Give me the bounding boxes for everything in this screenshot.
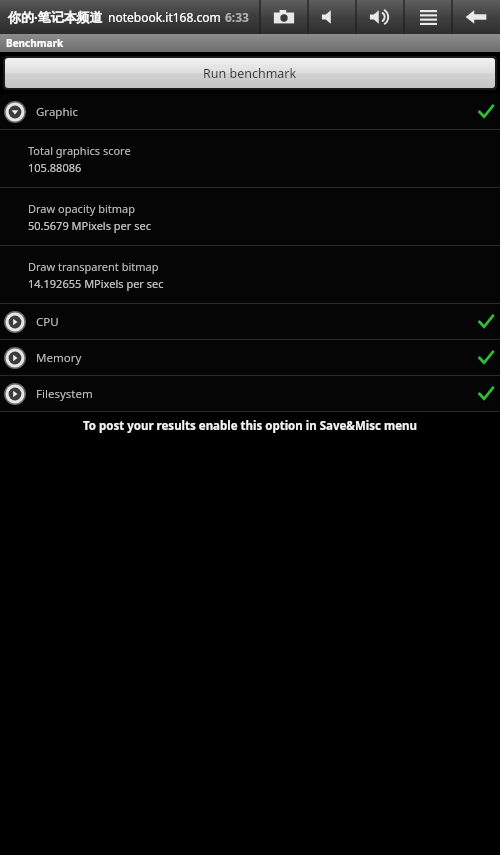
staticText: Graphic xyxy=(36,104,79,120)
button[interactable]: Total graphics score xyxy=(0,130,500,187)
staticText: Memory xyxy=(36,350,82,366)
staticText: Draw opacity bitmap xyxy=(28,201,135,216)
staticText: Total graphics score xyxy=(28,143,131,158)
staticText: Draw transparent bitmap xyxy=(28,259,159,274)
staticText: To post your results enable this option … xyxy=(83,418,417,434)
button[interactable]: CPU xyxy=(0,304,500,339)
button[interactable]: Draw transparent bitmap xyxy=(0,246,500,303)
button[interactable]: Memory xyxy=(0,340,500,375)
staticText: 6:33 xyxy=(225,9,249,25)
button[interactable]: Camera xyxy=(260,0,308,34)
button[interactable]: Draw opacity bitmap xyxy=(0,188,500,245)
button[interactable]: Graphic xyxy=(0,94,500,129)
staticText: Filesystem xyxy=(36,386,93,402)
staticText: 105.88086 xyxy=(28,160,82,175)
button[interactable]: Filesystem xyxy=(0,376,500,411)
staticText: Benchmark xyxy=(6,36,64,50)
staticText: notebook.it168.com xyxy=(108,9,221,25)
staticText: CPU xyxy=(36,314,59,330)
staticText: Run benchmark xyxy=(203,65,297,82)
button[interactable]: Volume down xyxy=(308,0,356,34)
staticText: 你的·笔记本频道 xyxy=(8,8,103,26)
button[interactable]: Back xyxy=(452,0,500,34)
staticText: 14.192655 MPixels per sec xyxy=(28,276,164,291)
button[interactable]: Run benchmark xyxy=(5,58,495,88)
button[interactable]: Volume up xyxy=(356,0,404,34)
button[interactable]: Menu xyxy=(404,0,452,34)
staticText: 50.5679 MPixels per sec xyxy=(28,218,151,233)
